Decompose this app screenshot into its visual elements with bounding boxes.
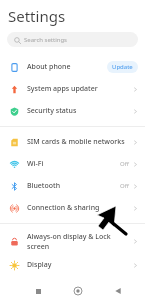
staticText: Security status xyxy=(27,106,77,116)
staticText: About phone xyxy=(27,62,71,72)
button[interactable]: Bluetooth xyxy=(0,175,145,197)
staticText: Always-on display & Lock screen xyxy=(27,232,111,251)
staticText: Search settings xyxy=(24,36,67,44)
button[interactable]: Connection & sharing xyxy=(0,197,145,219)
staticText: Off xyxy=(120,182,129,190)
staticText: Wi-Fi xyxy=(27,159,44,169)
staticText: System apps updater xyxy=(27,84,98,94)
staticText: Settings xyxy=(8,6,66,26)
button[interactable]: Update xyxy=(112,63,133,71)
button[interactable]: System apps updater xyxy=(0,78,145,100)
staticText: SIM cards & mobile networks xyxy=(27,137,125,147)
button[interactable]: Wi-Fi xyxy=(0,153,145,175)
staticText: Connection & sharing xyxy=(27,203,100,213)
button[interactable]: Always-on display & Lock screen xyxy=(0,228,145,254)
staticText: Bluetooth xyxy=(27,181,61,191)
staticText: Off xyxy=(120,160,129,168)
button[interactable]: Security status xyxy=(0,100,145,122)
button[interactable]: Search settings xyxy=(7,32,138,47)
button[interactable]: SIM cards & mobile networks xyxy=(0,131,145,153)
staticText: Display xyxy=(27,260,52,270)
button[interactable]: Recents xyxy=(30,283,46,299)
button[interactable]: About phone xyxy=(0,56,145,78)
button[interactable]: Back xyxy=(110,283,126,299)
staticText: Update xyxy=(112,63,133,71)
button[interactable]: Home xyxy=(70,283,86,299)
button[interactable]: Display xyxy=(0,254,145,276)
